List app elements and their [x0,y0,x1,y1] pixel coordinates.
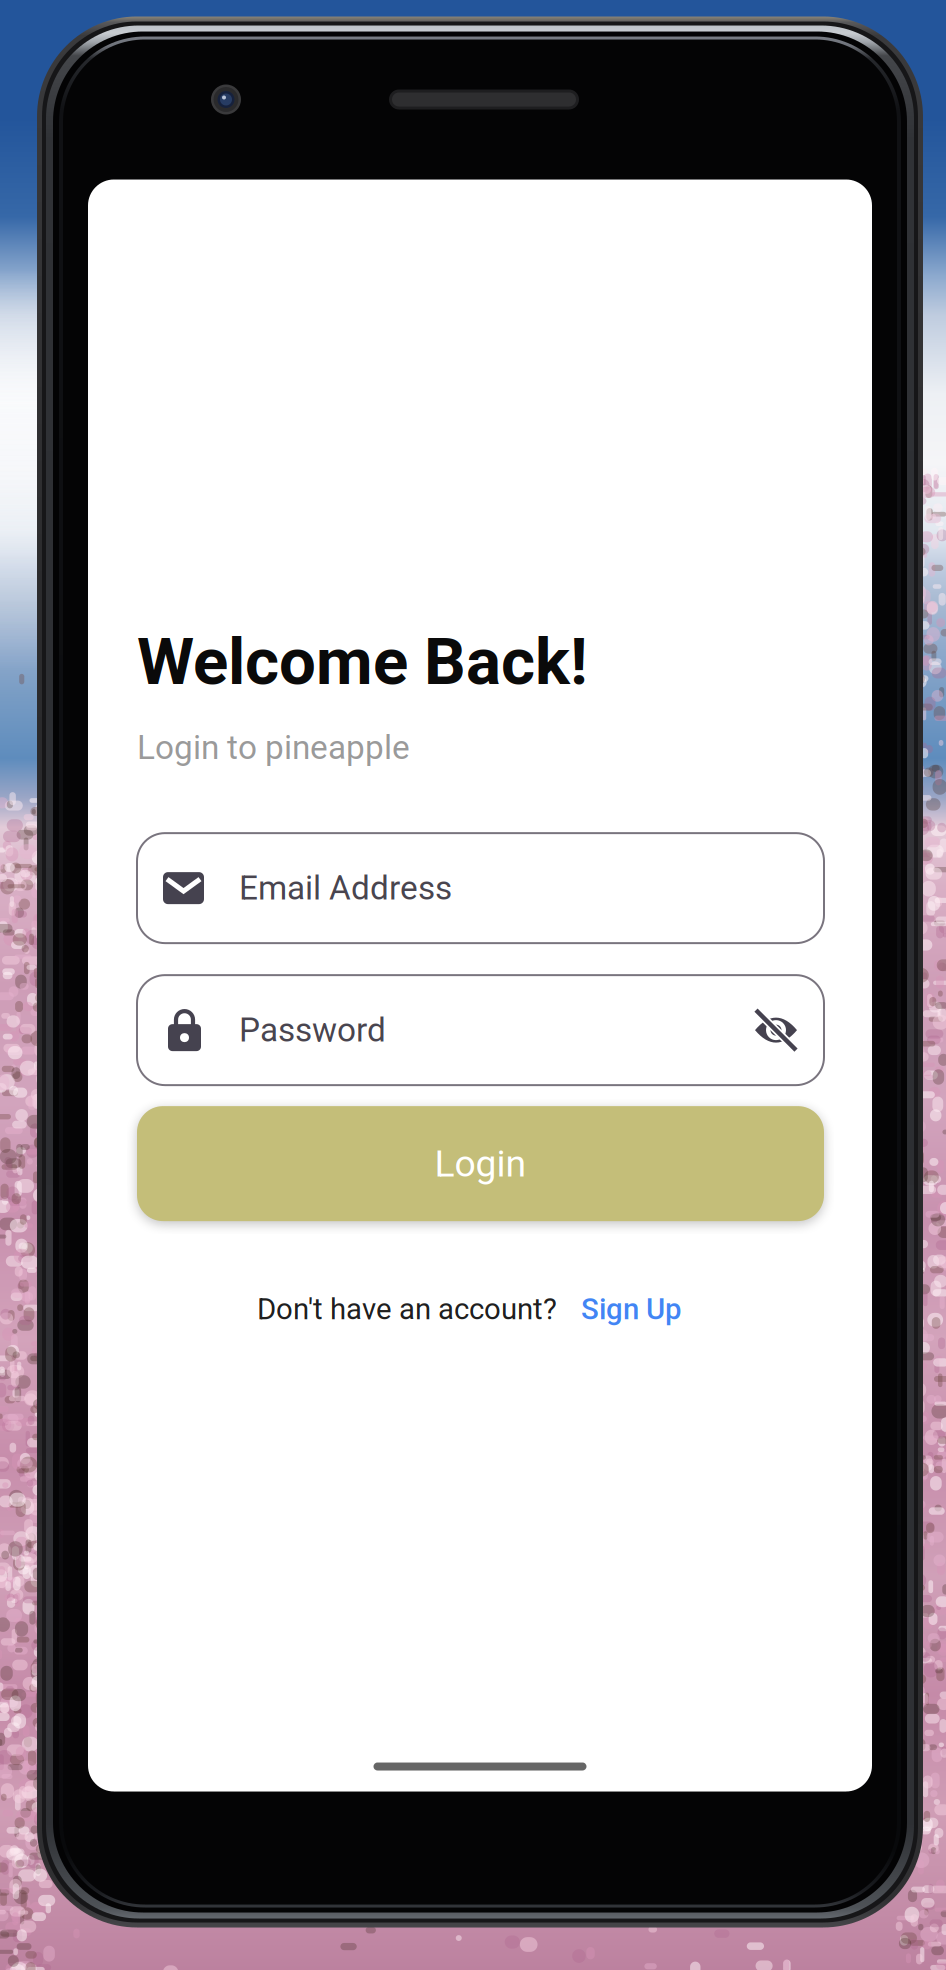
button[interactable]: Password [137,975,824,1085]
staticText: Login to pineapple [137,728,410,767]
staticText: Login [434,1142,526,1185]
staticText: Don't have an account? [257,1292,557,1326]
button[interactable]: Email Address [137,833,824,943]
button[interactable]: Sign Up [581,1292,681,1326]
staticText: Sign Up [581,1292,681,1326]
button[interactable]: Login [137,1106,824,1221]
staticText: Password [239,1011,386,1050]
staticText: Welcome Back! [137,623,588,700]
staticText: Email Address [239,869,452,908]
